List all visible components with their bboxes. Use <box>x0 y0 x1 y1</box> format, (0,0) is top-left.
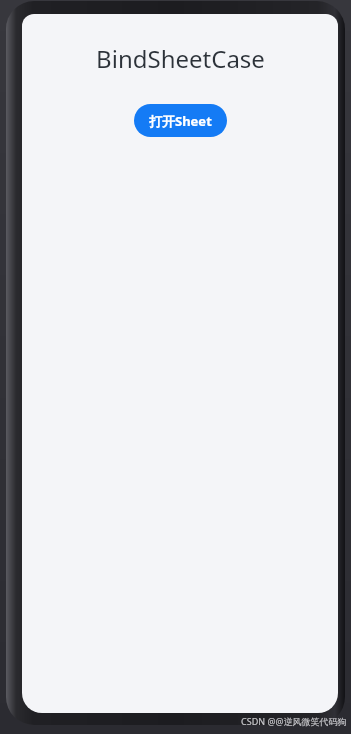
staticText: 打开Sheet <box>149 112 212 130</box>
button[interactable]: 打开Sheet <box>134 104 227 137</box>
staticText: CSDN @@逆风微笑代码狗 <box>241 715 347 727</box>
staticText: BindSheetCase <box>96 42 265 75</box>
